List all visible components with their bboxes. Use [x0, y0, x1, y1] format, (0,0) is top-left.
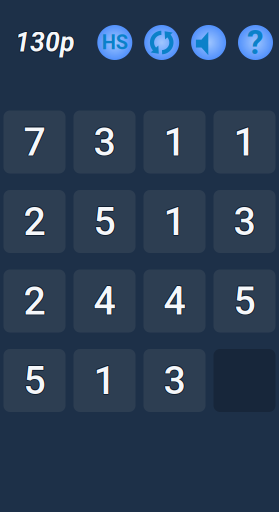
- staticText: 1: [163, 199, 185, 245]
- staticText: 3: [94, 119, 116, 165]
- staticText: 3: [164, 358, 186, 404]
- button[interactable]: 4: [143, 269, 205, 332]
- staticText: 5: [94, 198, 116, 244]
- staticText: 2: [24, 278, 46, 324]
- staticText: 3: [94, 118, 116, 164]
- staticText: 4: [164, 277, 186, 323]
- staticText: 1: [93, 358, 115, 404]
- staticText: 7: [24, 120, 46, 166]
- staticText: 2: [23, 199, 45, 245]
- staticText: 3: [93, 118, 115, 164]
- staticText: 5: [233, 279, 255, 325]
- staticText: 2: [23, 199, 45, 245]
- button[interactable]: 3: [143, 349, 205, 412]
- button[interactable]: 1: [213, 110, 275, 173]
- staticText: 5: [23, 357, 45, 404]
- staticText: 4: [164, 278, 186, 324]
- button[interactable]: Restart game: [144, 25, 179, 60]
- staticText: 1: [94, 357, 116, 403]
- staticText: 5: [93, 198, 115, 244]
- button[interactable]: 5: [73, 190, 135, 253]
- staticText: 4: [163, 278, 185, 324]
- staticText: 5: [233, 277, 255, 323]
- staticText: 4: [164, 279, 186, 325]
- staticText: 130p: [15, 26, 75, 57]
- button[interactable]: 3: [213, 190, 275, 253]
- button[interactable]: 1: [73, 349, 135, 412]
- staticText: 3: [234, 198, 256, 245]
- staticText: 5: [23, 358, 45, 404]
- button[interactable]: 3: [73, 110, 135, 173]
- staticText: 3: [233, 198, 255, 245]
- button[interactable]: 7: [3, 110, 65, 173]
- staticText: 5: [93, 199, 115, 245]
- staticText: 1: [163, 199, 185, 245]
- staticText: 4: [93, 278, 115, 324]
- staticText: 5: [23, 357, 45, 403]
- staticText: 1: [164, 118, 186, 164]
- staticText: 7: [23, 119, 45, 165]
- staticText: 130p: [16, 27, 76, 58]
- staticText: 1: [163, 198, 185, 244]
- staticText: 1: [163, 118, 185, 164]
- staticText: 5: [93, 198, 115, 245]
- staticText: 2: [23, 277, 45, 323]
- staticText: 1: [163, 198, 185, 245]
- staticText: 2: [24, 198, 46, 244]
- staticText: ?: [247, 23, 264, 62]
- button[interactable]: High score: [97, 25, 132, 60]
- staticText: 1: [233, 120, 255, 166]
- staticText: 3: [94, 120, 116, 166]
- staticText: 3: [93, 120, 115, 166]
- staticText: HS: [102, 31, 128, 54]
- staticText: 1: [233, 120, 255, 166]
- staticText: 5: [233, 278, 255, 324]
- staticText: 4: [163, 277, 185, 323]
- staticText: 1: [233, 119, 255, 165]
- staticText: 2: [23, 277, 45, 323]
- staticText: 1: [93, 357, 115, 404]
- button[interactable]: Help: [238, 25, 273, 60]
- button[interactable]: 5: [213, 269, 275, 332]
- staticText: 130p: [14, 27, 74, 59]
- staticText: 2: [24, 279, 46, 325]
- staticText: 1: [234, 118, 256, 164]
- staticText: 1: [234, 119, 256, 165]
- staticText: 5: [23, 358, 45, 404]
- button[interactable]: 2: [3, 269, 65, 332]
- staticText: 7: [23, 120, 45, 166]
- staticText: 5: [23, 357, 45, 403]
- button[interactable]: 5: [3, 349, 65, 412]
- staticText: 130p: [16, 26, 76, 58]
- staticText: 3: [233, 198, 255, 244]
- staticText: 3: [233, 198, 255, 245]
- staticText: 3: [164, 357, 186, 404]
- button[interactable]: 1: [143, 190, 205, 253]
- staticText: 1: [94, 358, 116, 404]
- button[interactable]: 2: [3, 190, 65, 253]
- staticText: 2: [23, 278, 45, 324]
- staticText: 5: [24, 357, 46, 404]
- staticText: 130p: [15, 28, 75, 59]
- button[interactable]: Sound: [191, 25, 226, 60]
- staticText: 1: [163, 118, 185, 164]
- staticText: 7: [23, 119, 45, 165]
- staticText: 1: [163, 119, 185, 165]
- staticText: 5: [233, 277, 255, 323]
- staticText: 1: [93, 357, 115, 404]
- staticText: 7: [23, 120, 45, 166]
- staticText: 4: [93, 277, 115, 323]
- staticText: 1: [93, 357, 115, 403]
- staticText: 130p: [14, 27, 74, 58]
- button[interactable]: 4: [73, 269, 135, 332]
- staticText: 1: [93, 357, 115, 403]
- staticText: 3: [93, 118, 115, 164]
- staticText: 130p: [14, 26, 74, 58]
- staticText: 2: [24, 199, 46, 245]
- staticText: 1: [233, 118, 255, 164]
- staticText: 4: [93, 279, 115, 325]
- button[interactable]: 1: [143, 110, 205, 173]
- staticText: 5: [233, 278, 255, 324]
- staticText: 5: [24, 358, 46, 404]
